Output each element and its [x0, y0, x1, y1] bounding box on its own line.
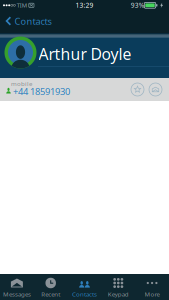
staticText: Messages: [3, 290, 31, 298]
staticText: Recent: [41, 290, 60, 298]
staticText: More: [145, 290, 160, 298]
staticText: 13:29: [75, 1, 93, 10]
button[interactable]: Contacts: [0, 10, 56, 33]
staticText: Arthur Doyle: [38, 43, 131, 65]
staticText: mobile: [11, 79, 32, 88]
button[interactable]: Send message: [149, 83, 162, 96]
button[interactable]: Add to favourites: [131, 83, 144, 96]
staticText: Keypad: [108, 290, 129, 298]
staticText: Contacts: [72, 290, 97, 298]
staticText: Contacts: [14, 15, 51, 27]
staticText: 93%: [131, 1, 145, 10]
button[interactable]: Recent: [34, 274, 68, 300]
button[interactable]: Contacts: [68, 274, 101, 300]
staticText: +44 18591930: [13, 85, 70, 98]
button[interactable]: mobile: [0, 78, 169, 101]
button[interactable]: More: [135, 274, 169, 300]
button[interactable]: Messages: [0, 274, 34, 300]
staticText: TIM: [17, 1, 27, 9]
button[interactable]: Keypad: [101, 274, 135, 300]
